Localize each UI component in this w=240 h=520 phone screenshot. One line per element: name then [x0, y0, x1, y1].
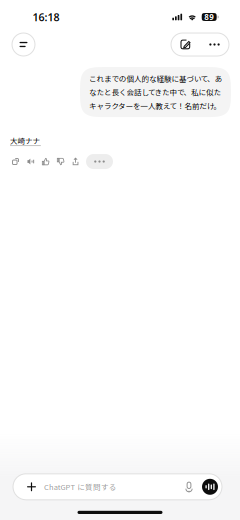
- button[interactable]: More options: [200, 33, 229, 56]
- staticText: 大崎ナナ: [10, 135, 41, 146]
- button[interactable]: Add attachment: [19, 474, 44, 500]
- button[interactable]: More actions: [86, 154, 113, 169]
- button[interactable]: Dictate: [178, 474, 200, 500]
- button[interactable]: Share: [68, 154, 83, 169]
- staticText: ChatGPT に質問する: [44, 481, 117, 492]
- button[interactable]: Voice mode: [200, 474, 220, 500]
- staticText: 89: [204, 12, 214, 22]
- button[interactable]: Good response: [38, 154, 53, 169]
- button[interactable]: Read aloud: [23, 154, 38, 169]
- staticText: 16:18: [32, 10, 59, 24]
- button[interactable]: Sidebar: [12, 33, 35, 56]
- button[interactable]: New chat: [171, 33, 200, 56]
- button[interactable]: Copy: [8, 154, 23, 169]
- button[interactable]: Bad response: [53, 154, 68, 169]
- staticText: これまでの個人的な経験に基づいて、あなたと長く会話してきた中で、私に似たキャラク…: [89, 73, 222, 111]
